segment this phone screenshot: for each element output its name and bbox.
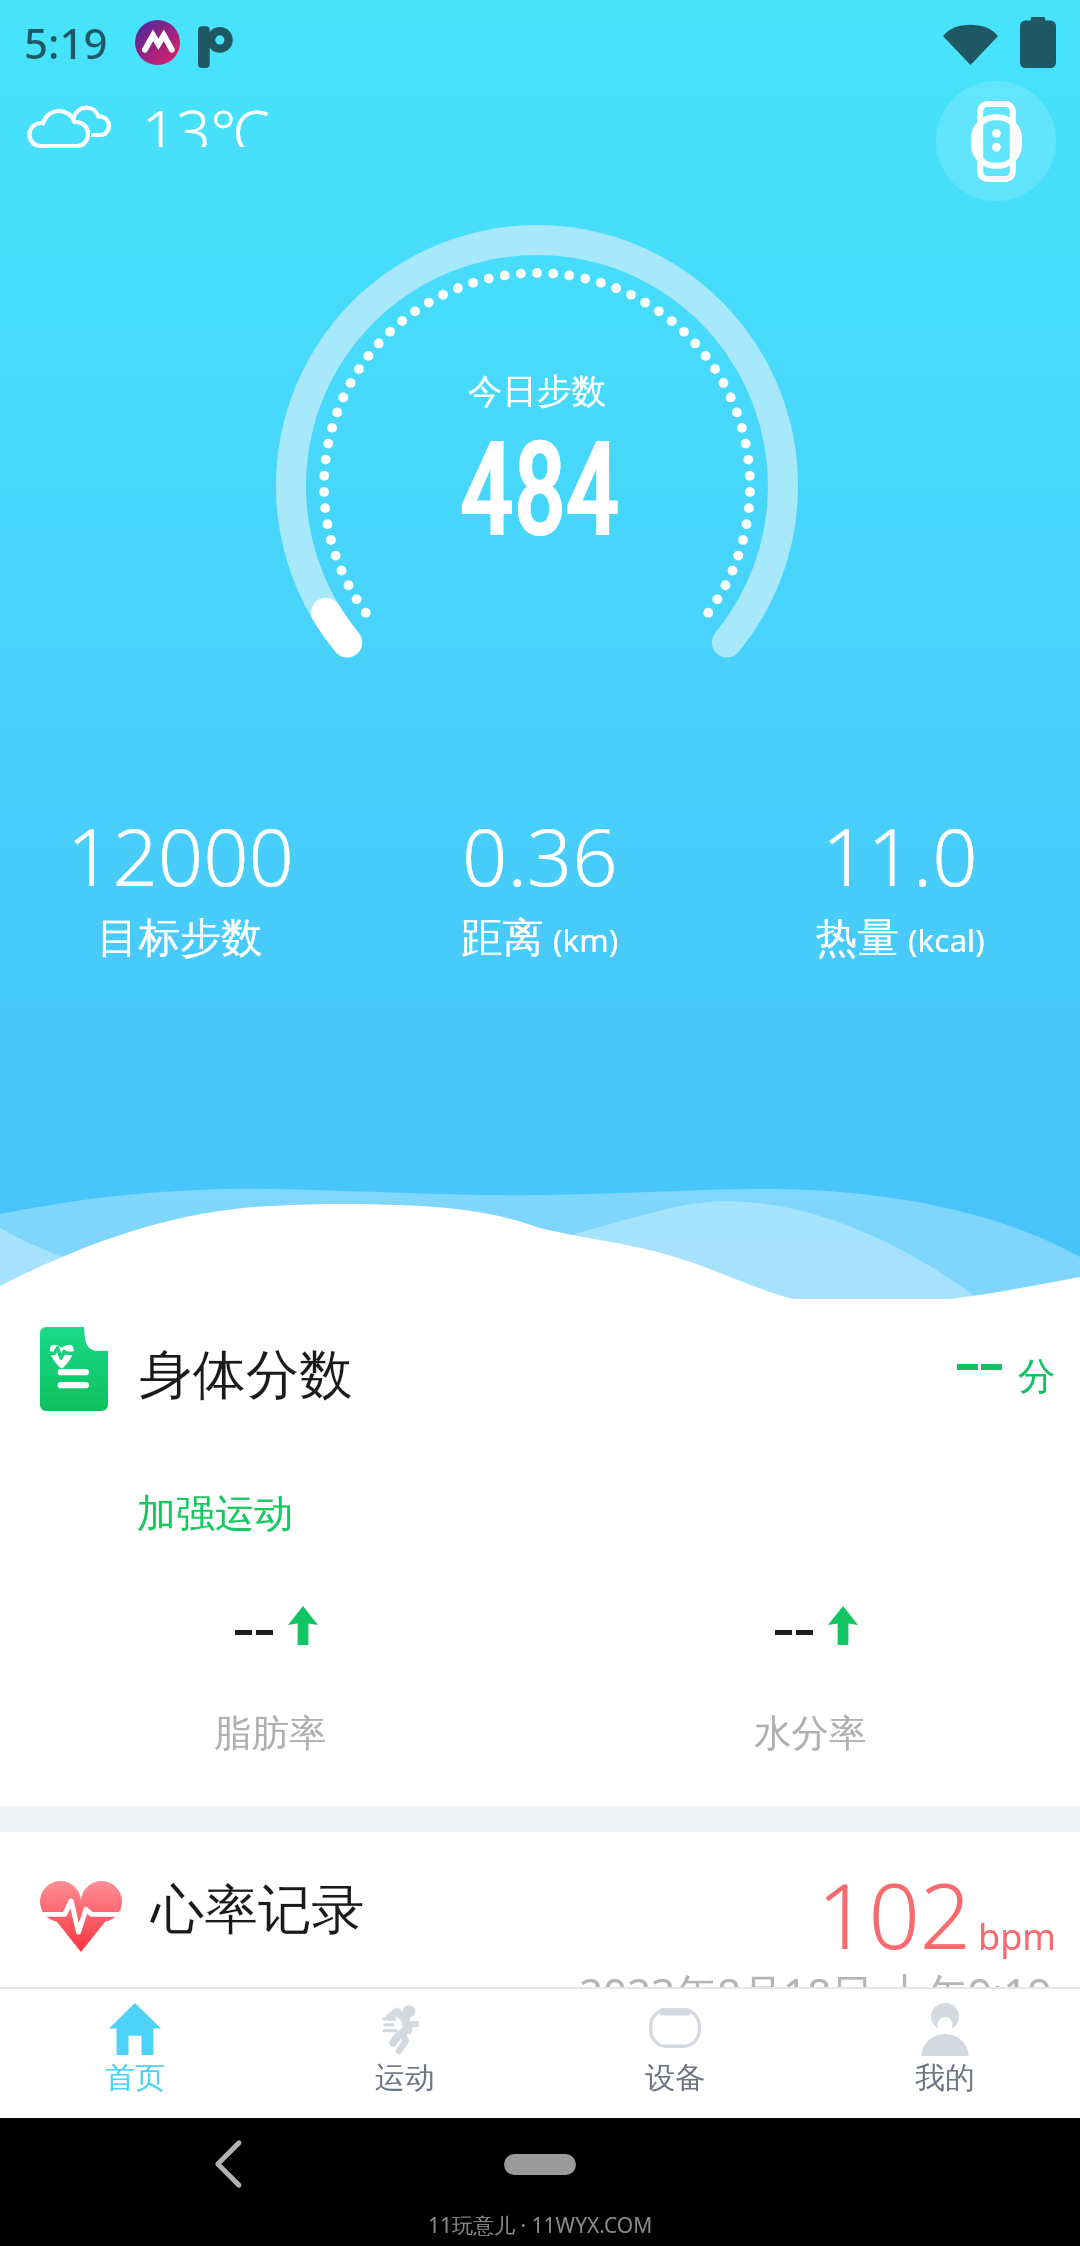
staticText: 首页: [105, 2059, 165, 2097]
staticText: 加强运动: [137, 1489, 293, 1538]
button[interactable]: 设备: [540, 1989, 810, 2118]
staticText: 设备: [645, 2059, 705, 2097]
button[interactable]: 水分率: [540, 1606, 1080, 1757]
button[interactable]: 首页: [0, 1989, 270, 2118]
staticText: 5:19: [24, 14, 108, 71]
staticText: (kcal): [908, 918, 985, 961]
staticText: 11玩意儿 · 11WYX.COM: [428, 2211, 653, 2240]
button[interactable]: 心率记录: [0, 1832, 1080, 1987]
staticText: bpm: [978, 1912, 1056, 1961]
button[interactable]: My device: [936, 81, 1056, 201]
staticText: 484: [461, 416, 619, 565]
staticText: 2023年8月18日 上午9:19: [579, 1964, 1052, 1987]
button[interactable]: 脂肪率: [0, 1606, 540, 1757]
staticText: 13℃: [142, 90, 270, 147]
staticText: 脂肪率: [214, 1710, 327, 1757]
button[interactable]: 11.0: [720, 801, 1080, 964]
staticText: 水分率: [754, 1710, 867, 1757]
staticText: 运动: [375, 2059, 435, 2097]
staticText: 距离: [461, 912, 544, 964]
staticText: 11.0: [822, 801, 978, 909]
button[interactable]: 我的: [810, 1989, 1080, 2118]
button[interactable]: 运动: [270, 1989, 540, 2118]
button[interactable]: 身体分数: [0, 1299, 1080, 1806]
staticText: 今日步数: [468, 370, 606, 413]
button[interactable]: Home: [504, 2154, 576, 2175]
button[interactable]: Weather: [29, 90, 270, 150]
staticText: 12000: [67, 801, 294, 909]
staticText: 102: [817, 1853, 972, 1976]
button[interactable]: Back: [186, 2119, 276, 2209]
staticText: 目标步数: [97, 912, 263, 964]
staticText: 心率记录: [151, 1877, 365, 1944]
staticText: 热量: [816, 912, 899, 964]
button[interactable]: 12000: [0, 801, 360, 964]
staticText: (km): [553, 918, 619, 961]
staticText: 身体分数: [139, 1342, 353, 1409]
staticText: 我的: [915, 2059, 975, 2097]
staticText: 分: [1018, 1353, 1056, 1400]
staticText: 0.36: [462, 801, 618, 909]
button[interactable]: 0.36: [360, 801, 720, 964]
